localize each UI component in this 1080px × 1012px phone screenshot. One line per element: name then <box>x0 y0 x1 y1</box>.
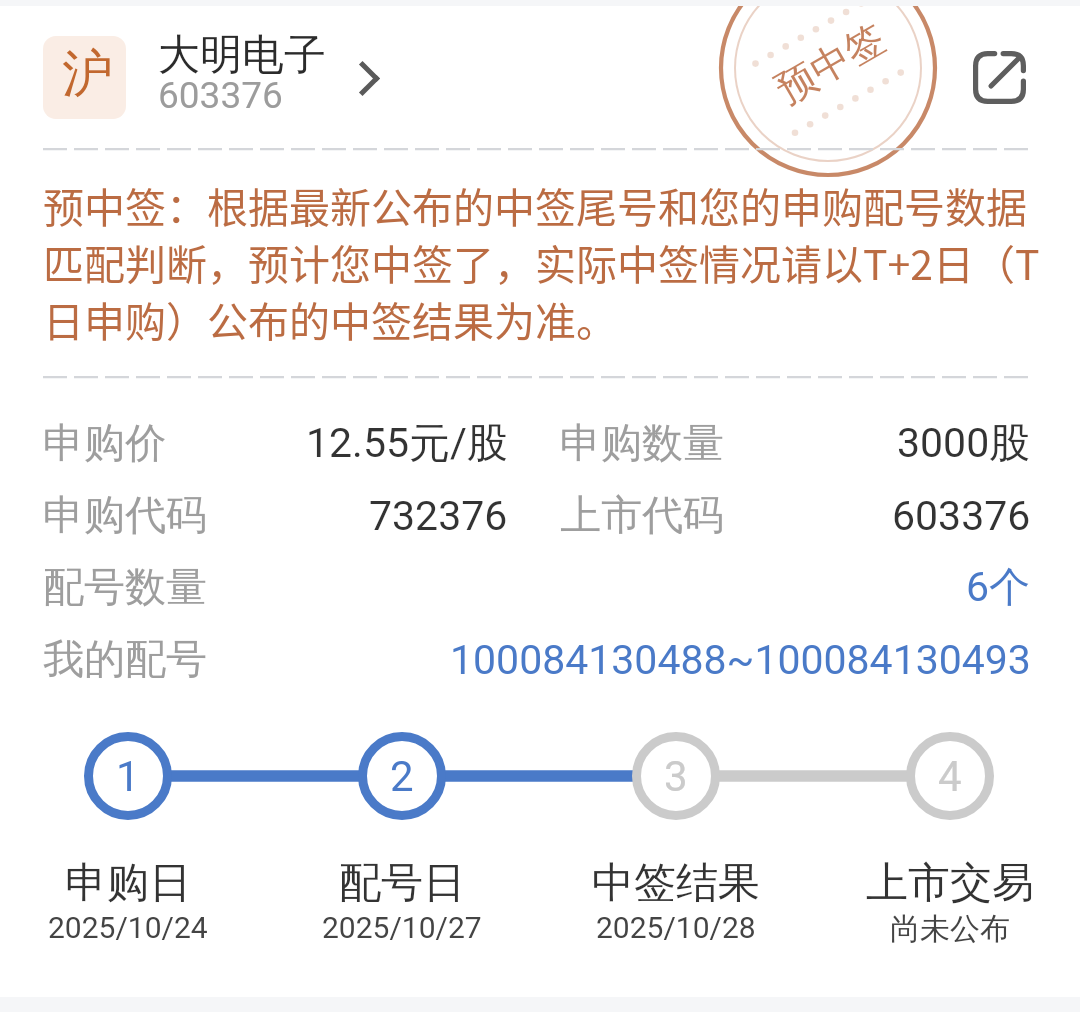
staticText: 6个 <box>966 562 1031 614</box>
staticText: 上市代码 <box>560 490 724 542</box>
staticText: 3000股 <box>897 418 1031 470</box>
button[interactable]: 2 <box>265 735 539 945</box>
staticText: 603376 <box>892 492 1031 540</box>
staticText: 2 <box>390 752 414 801</box>
staticText: 603376 <box>158 74 283 117</box>
staticText: 配号数量 <box>43 562 207 614</box>
button[interactable]: 3 <box>539 735 813 945</box>
staticText: 4 <box>938 752 962 801</box>
staticText: 2025/10/24 <box>48 910 208 945</box>
staticText: 我的配号 <box>43 634 207 686</box>
button[interactable]: 沪 <box>43 29 379 125</box>
staticText: 预中签 <box>768 13 893 114</box>
staticText: 大明电子 <box>158 29 326 82</box>
staticText: 申购价 <box>43 418 166 470</box>
staticText: 732376 <box>369 492 508 540</box>
staticText: 尚未公布 <box>890 910 1010 948</box>
staticText: 2025/10/27 <box>322 910 482 945</box>
staticText: 中签结果 <box>592 857 760 910</box>
staticText: 上市交易 <box>866 857 1034 910</box>
staticText: 申购数量 <box>560 418 724 470</box>
staticText: 1 <box>116 752 140 801</box>
staticText: 2025/10/28 <box>596 910 756 945</box>
button[interactable]: Share <box>954 32 1044 122</box>
staticText: 沪 <box>62 42 113 106</box>
staticText: 12.55元/股 <box>306 418 508 470</box>
staticText: 申购日 <box>65 857 191 910</box>
button[interactable]: 4 <box>813 735 1080 948</box>
staticText: 3 <box>664 752 688 801</box>
staticText: 申购代码 <box>43 490 207 542</box>
button[interactable]: 1 <box>0 735 265 945</box>
staticText: 配号日 <box>339 857 465 910</box>
staticText: 预中签：根据最新公布的中签尾号和您的申购配号数据匹配判断，预计您中签了，实际中签… <box>43 175 1042 348</box>
staticText: 100084130488~100084130493 <box>450 636 1031 684</box>
